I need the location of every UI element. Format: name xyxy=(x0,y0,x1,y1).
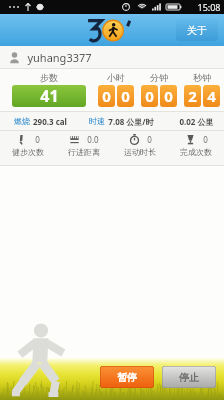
button[interactable]: yuhang3377 xyxy=(8,46,224,68)
staticText: 完成次数 xyxy=(180,147,212,157)
staticText: 燃烧 xyxy=(14,116,30,126)
staticText: yuhang3377 xyxy=(27,50,92,65)
button[interactable]: 0 xyxy=(0,131,56,165)
button[interactable]: 0 xyxy=(168,131,224,165)
button[interactable]: 0.0 xyxy=(56,131,112,165)
staticText: 4 xyxy=(207,86,216,106)
button[interactable]: 0 xyxy=(112,131,168,165)
staticText: 0 xyxy=(164,86,173,106)
staticText: 0 xyxy=(145,86,154,106)
staticText: 运动时长 xyxy=(124,147,156,157)
button[interactable]: 关于 xyxy=(176,19,218,41)
staticText: 小时 xyxy=(107,72,125,83)
staticText: 停止 xyxy=(179,371,199,384)
staticText: 暂停 xyxy=(117,371,137,384)
staticText: 0 xyxy=(121,86,130,106)
staticText: 健步次数 xyxy=(12,147,44,157)
button[interactable]: 停止 xyxy=(162,366,216,388)
staticText: 行进距离 xyxy=(68,147,100,157)
staticText: 0 xyxy=(35,134,40,145)
staticText: 290.3 cal xyxy=(33,116,67,127)
staticText: 秒钟 xyxy=(193,72,211,83)
staticText: 0.0 xyxy=(87,134,99,145)
staticText: 7.08 公里/时 xyxy=(108,116,154,127)
staticText: 步数 xyxy=(40,72,58,83)
staticText: 41 xyxy=(40,85,59,107)
staticText: 2 xyxy=(188,86,197,106)
staticText: 关于 xyxy=(187,24,207,37)
staticText: 时速 xyxy=(89,116,105,126)
staticText: 15:08 xyxy=(197,1,221,13)
staticText: 0 xyxy=(203,134,208,145)
staticText: 0 xyxy=(147,134,152,145)
button[interactable]: 暂停 xyxy=(100,366,154,388)
staticText: 0.02 公里 xyxy=(179,116,214,127)
staticText: 0 xyxy=(102,86,111,106)
staticText: 分钟 xyxy=(150,72,168,83)
